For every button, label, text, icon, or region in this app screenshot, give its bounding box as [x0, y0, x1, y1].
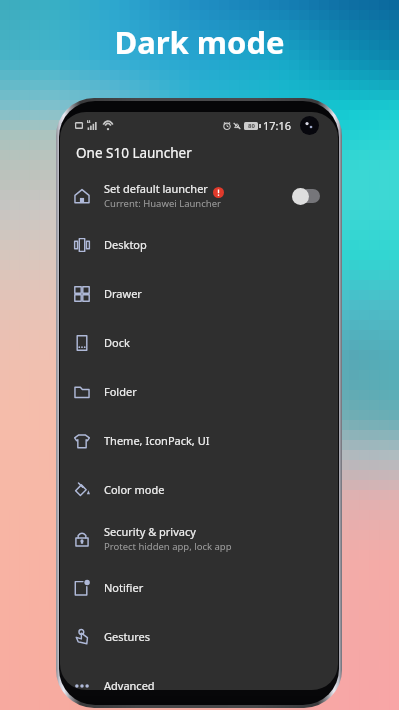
- staticText: 80: [248, 122, 255, 130]
- button[interactable]: Notifier: [60, 563, 338, 612]
- staticText: Protect hidden app, lock app: [104, 540, 232, 553]
- button[interactable]: Color mode: [60, 465, 338, 514]
- staticText: Drawer: [104, 286, 142, 301]
- button[interactable]: Set default launcher toggle: [292, 186, 320, 206]
- button[interactable]: Security & privacy: [60, 514, 338, 563]
- staticText: Security & privacy: [104, 524, 196, 539]
- staticText: Dark mode: [0, 21, 399, 63]
- staticText: Advanced: [104, 678, 155, 690]
- button[interactable]: Folder: [60, 367, 338, 416]
- button[interactable]: Set default launcher: [60, 171, 338, 220]
- staticText: One S10 Launcher: [76, 144, 192, 162]
- button[interactable]: Dock: [60, 318, 338, 367]
- staticText: Dock: [104, 335, 130, 350]
- staticText: Theme, IconPack, UI: [104, 433, 210, 448]
- button[interactable]: Gestures: [60, 612, 338, 661]
- staticText: Folder: [104, 384, 137, 399]
- staticText: Desktop: [104, 237, 147, 252]
- staticText: Gestures: [104, 629, 151, 644]
- staticText: Set default launcher: [104, 181, 208, 196]
- button[interactable]: Theme, IconPack, UI: [60, 416, 338, 465]
- button[interactable]: Advanced: [60, 661, 338, 690]
- staticText: Current: Huawei Launcher: [104, 197, 221, 210]
- button[interactable]: Drawer: [60, 269, 338, 318]
- staticText: 17:16: [263, 118, 292, 133]
- staticText: Color mode: [104, 482, 165, 497]
- button[interactable]: Desktop: [60, 220, 338, 269]
- staticText: Notifier: [104, 580, 144, 595]
